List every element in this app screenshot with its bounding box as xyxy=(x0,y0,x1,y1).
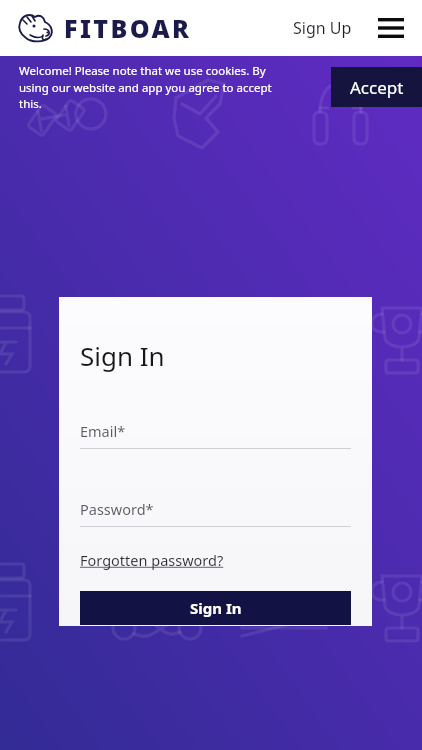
button[interactable]: Password* xyxy=(80,499,351,527)
staticText: Sign In xyxy=(190,598,242,618)
staticText: FITBOAR xyxy=(64,11,192,45)
staticText: Email* xyxy=(80,421,126,441)
button[interactable]: Email* xyxy=(80,421,351,449)
staticText: Forgotten password? xyxy=(80,550,224,570)
button[interactable]: Forgotten password? xyxy=(80,550,224,570)
staticText: Sign In xyxy=(80,338,165,373)
button[interactable]: Sign In xyxy=(80,591,351,625)
button[interactable]: Sign Up xyxy=(285,9,360,47)
staticText: Welcome! Please note that we use cookies… xyxy=(19,63,287,111)
button[interactable]: Accept xyxy=(331,67,422,107)
staticText: Password* xyxy=(80,499,154,519)
staticText: Sign Up xyxy=(293,17,352,39)
staticText: Accept xyxy=(350,76,404,99)
button[interactable]: Menu xyxy=(374,11,408,45)
